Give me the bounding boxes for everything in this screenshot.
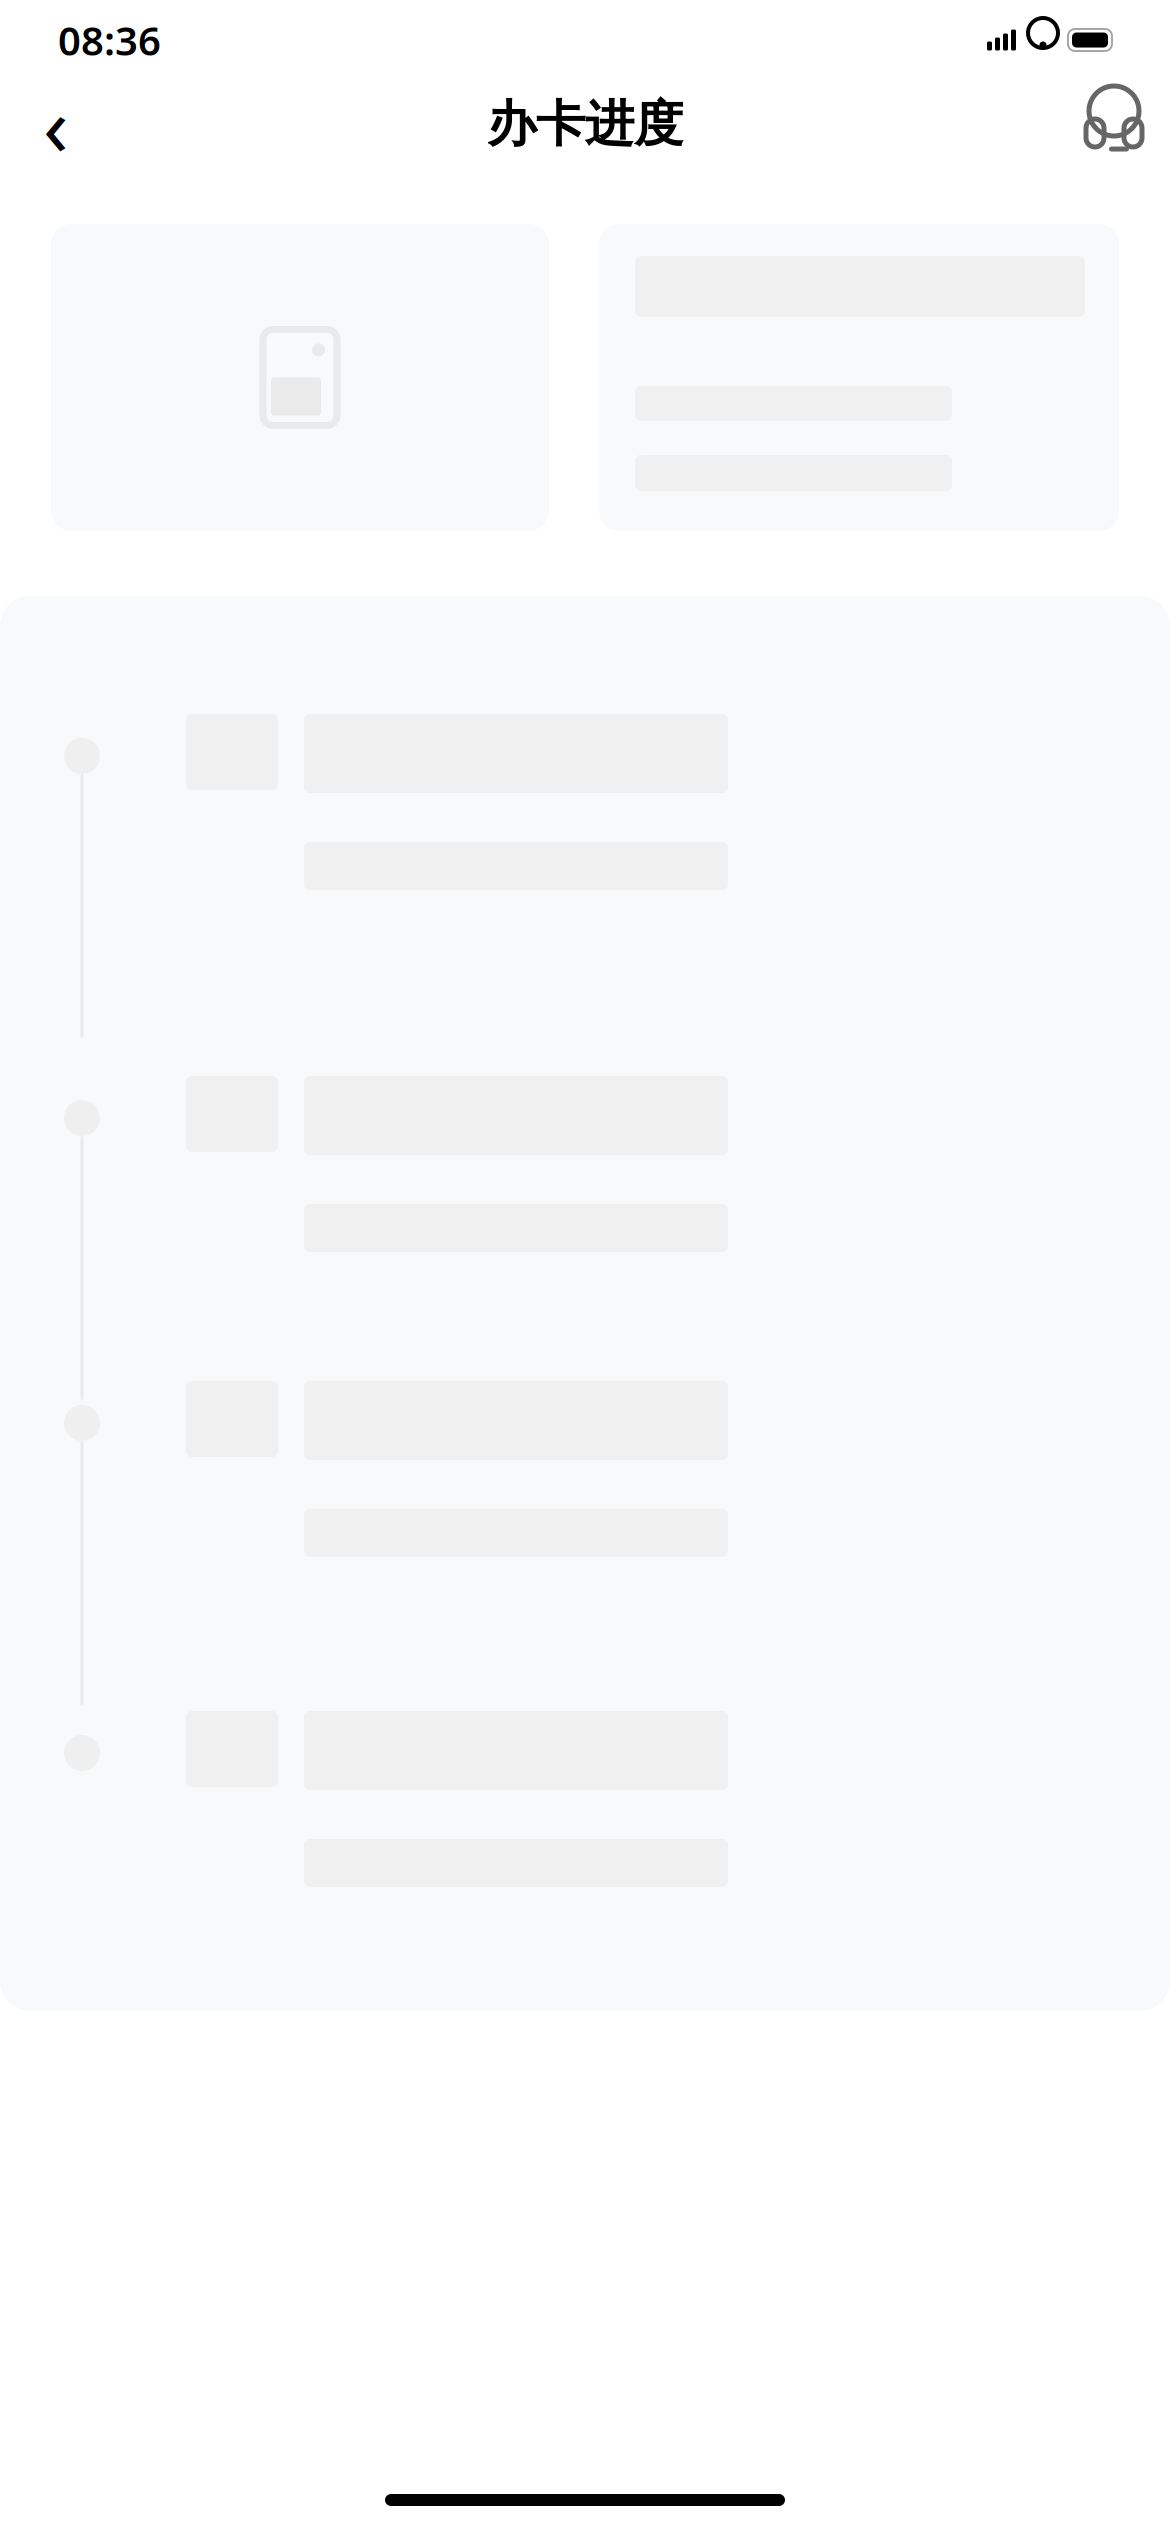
button[interactable]: Customer service [1072,82,1156,166]
staticText: ‹ [43,69,69,179]
staticText: 办卡进度 [487,94,683,154]
button[interactable]: Back [14,82,98,166]
staticText: 08:36 [58,13,161,66]
